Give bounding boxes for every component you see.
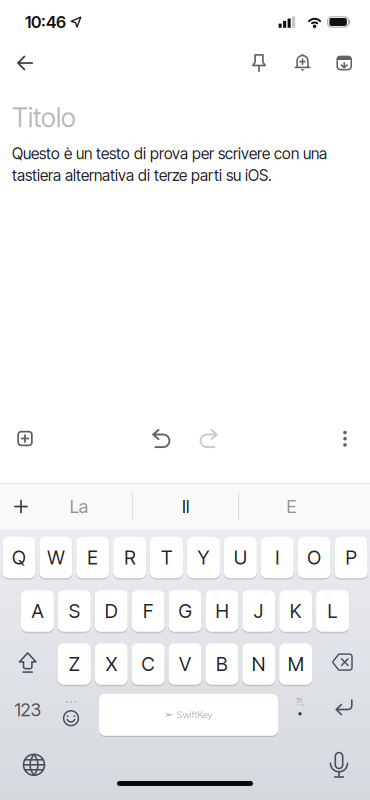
button[interactable]: I xyxy=(261,537,294,578)
staticText: Titolo xyxy=(12,101,76,134)
button[interactable]: E xyxy=(241,484,341,529)
button[interactable]: M xyxy=(279,643,312,685)
staticText: F xyxy=(143,599,153,623)
staticText: Q xyxy=(12,546,26,569)
staticText: D xyxy=(105,599,118,623)
button[interactable]: E xyxy=(76,537,109,578)
button[interactable]: J xyxy=(242,590,275,632)
staticText: H xyxy=(215,599,228,623)
button[interactable]: S xyxy=(58,590,91,632)
button[interactable]: La xyxy=(29,484,129,529)
button[interactable]: Space xyxy=(99,694,278,736)
staticText: SwiftKey xyxy=(176,709,212,721)
button[interactable]: Back xyxy=(5,44,45,82)
staticText: Il xyxy=(182,496,189,517)
button[interactable]: D xyxy=(95,590,128,632)
button[interactable]: K xyxy=(279,590,312,632)
button[interactable]: H xyxy=(205,590,238,632)
staticText: T xyxy=(161,546,172,569)
button[interactable]: Dictate xyxy=(318,744,358,786)
button[interactable]: X xyxy=(95,643,128,685)
button[interactable]: Next keyboard xyxy=(11,744,57,786)
staticText: 10:46 xyxy=(25,12,66,32)
button[interactable]: Pin note xyxy=(239,44,279,82)
button[interactable]: T xyxy=(150,537,183,578)
button[interactable]: L xyxy=(316,590,349,632)
button[interactable]: Numbers xyxy=(2,694,48,736)
button[interactable]: More options xyxy=(323,416,367,460)
staticText: U xyxy=(234,546,247,569)
button[interactable]: P xyxy=(334,537,367,578)
button[interactable]: Archive xyxy=(324,44,364,82)
staticText: G xyxy=(178,599,191,623)
button[interactable]: W xyxy=(39,537,72,578)
button[interactable]: G xyxy=(168,590,201,632)
staticText: 123 xyxy=(14,699,41,721)
staticText: Questo è un testo di prova per scrivere … xyxy=(12,144,327,163)
button[interactable]: B xyxy=(205,643,238,685)
button[interactable]: Q xyxy=(2,537,35,578)
button[interactable]: SwiftKey menu xyxy=(0,484,42,529)
staticText: J xyxy=(254,599,264,623)
staticText: A xyxy=(31,599,43,623)
staticText: M xyxy=(288,652,304,676)
staticText: W xyxy=(47,546,64,569)
staticText: P xyxy=(345,546,356,569)
staticText: ?!, xyxy=(296,697,304,707)
button[interactable]: R xyxy=(113,537,146,578)
button[interactable]: V xyxy=(168,643,201,685)
button[interactable]: Undo xyxy=(145,416,175,460)
staticText: X xyxy=(106,652,117,676)
button[interactable]: A xyxy=(21,590,54,632)
staticText: L xyxy=(328,599,338,623)
button[interactable]: C xyxy=(132,643,165,685)
staticText: Z xyxy=(69,652,80,676)
button[interactable]: Redo xyxy=(194,416,224,460)
staticText: I xyxy=(275,546,279,569)
button[interactable]: Emoji xyxy=(48,694,84,736)
button[interactable]: O xyxy=(298,537,331,578)
button[interactable]: Y xyxy=(187,537,220,578)
staticText: La xyxy=(70,496,88,517)
staticText: O xyxy=(307,546,321,569)
staticText: B xyxy=(216,652,228,676)
button[interactable]: Return xyxy=(320,694,368,736)
button[interactable]: Period xyxy=(280,694,320,736)
button[interactable]: Add reminder xyxy=(282,44,322,82)
staticText: tastiera alternativa di terze parti su i… xyxy=(12,166,272,185)
staticText: N xyxy=(252,652,266,676)
staticText: E xyxy=(87,546,98,569)
staticText: V xyxy=(179,652,191,676)
staticText: K xyxy=(290,599,302,623)
staticText: Y xyxy=(197,546,209,569)
button[interactable]: Il xyxy=(135,484,235,529)
button[interactable]: Add xyxy=(3,416,47,460)
button[interactable]: U xyxy=(224,537,257,578)
button[interactable]: N xyxy=(242,643,275,685)
staticText: S xyxy=(69,599,80,623)
button[interactable]: F xyxy=(132,590,165,632)
button[interactable]: Z xyxy=(58,643,91,685)
button[interactable]: Delete xyxy=(323,643,361,685)
staticText: C xyxy=(142,652,155,676)
staticText: R xyxy=(124,546,135,569)
staticText: E xyxy=(286,496,296,517)
button[interactable]: Shift xyxy=(9,643,47,685)
